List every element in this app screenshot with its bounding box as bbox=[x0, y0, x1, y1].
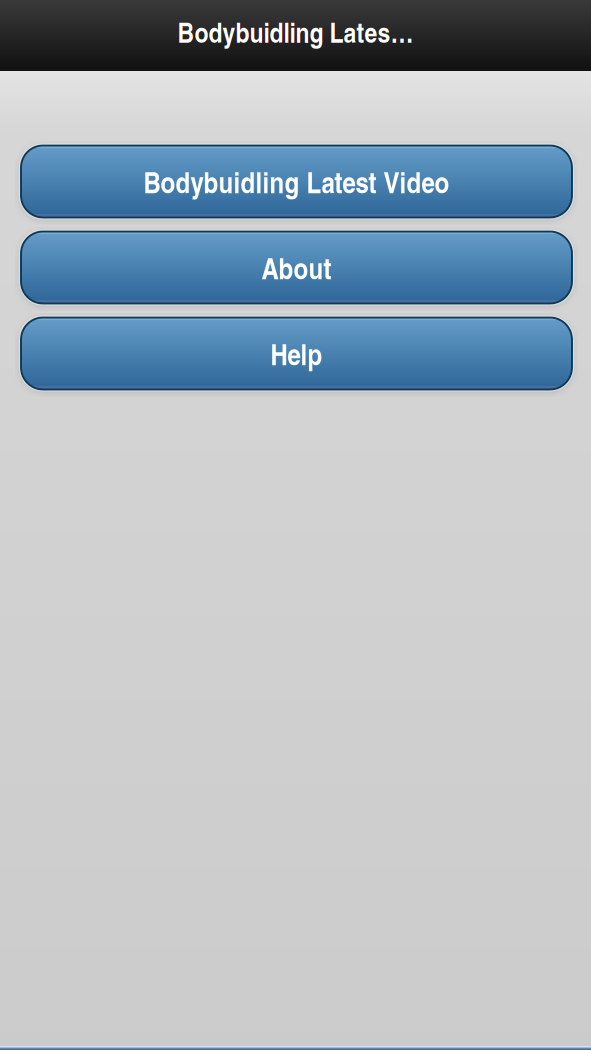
button[interactable]: Help bbox=[20, 317, 571, 389]
staticText: Bodybuidling Latest Video bbox=[143, 161, 449, 202]
staticText: Bodybuidling Lates… bbox=[177, 12, 413, 51]
button[interactable]: About bbox=[20, 231, 571, 303]
staticText: About bbox=[261, 247, 331, 288]
button[interactable]: Bodybuidling Latest Video bbox=[20, 145, 571, 217]
staticText: Help bbox=[270, 333, 322, 374]
